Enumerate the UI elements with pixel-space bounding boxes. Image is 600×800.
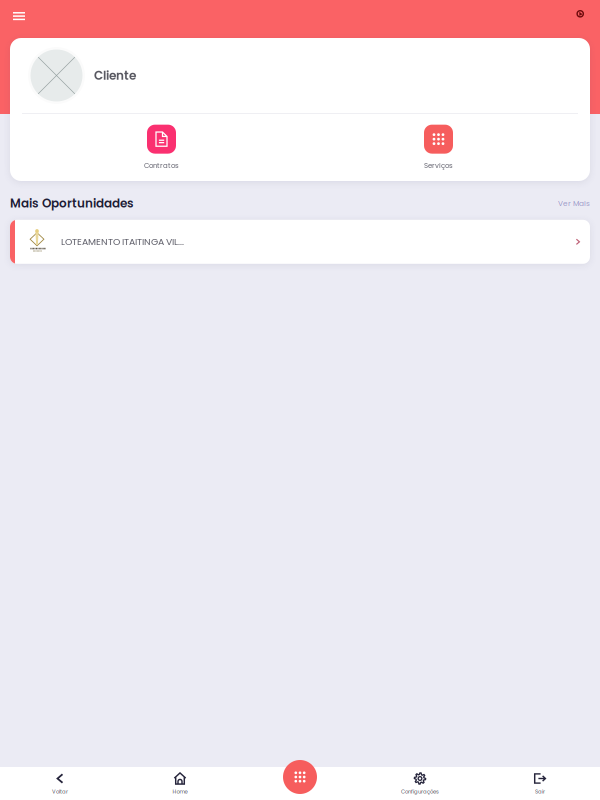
staticText: Voltar [52,788,68,795]
staticText: Contratos [144,161,179,170]
button[interactable]: LOTEAMENTO ITAITINGA VIL... [10,220,590,264]
staticText: Serviços [424,161,453,170]
button[interactable]: Sair [480,767,600,800]
staticText: LOTEAMENTO ITAITINGA VIL... [61,235,184,248]
button[interactable]: Menu [0,2,37,30]
button[interactable]: Home [120,767,240,800]
staticText: Ver Mais [558,198,590,209]
button[interactable]: Configurações [360,767,480,800]
button[interactable]: Apps [283,760,317,794]
staticText: Mais Oportunidades [10,195,134,212]
button[interactable]: Contratos [23,125,300,170]
button[interactable]: Serviços [300,125,577,170]
button[interactable]: Ver Mais [558,198,590,209]
staticText: Cliente [94,67,136,84]
button[interactable]: Voltar [0,767,120,800]
button[interactable]: Settings [564,2,600,30]
staticText: Configurações [401,788,439,795]
staticText: Sair [535,788,545,795]
staticText: Home [172,788,187,795]
